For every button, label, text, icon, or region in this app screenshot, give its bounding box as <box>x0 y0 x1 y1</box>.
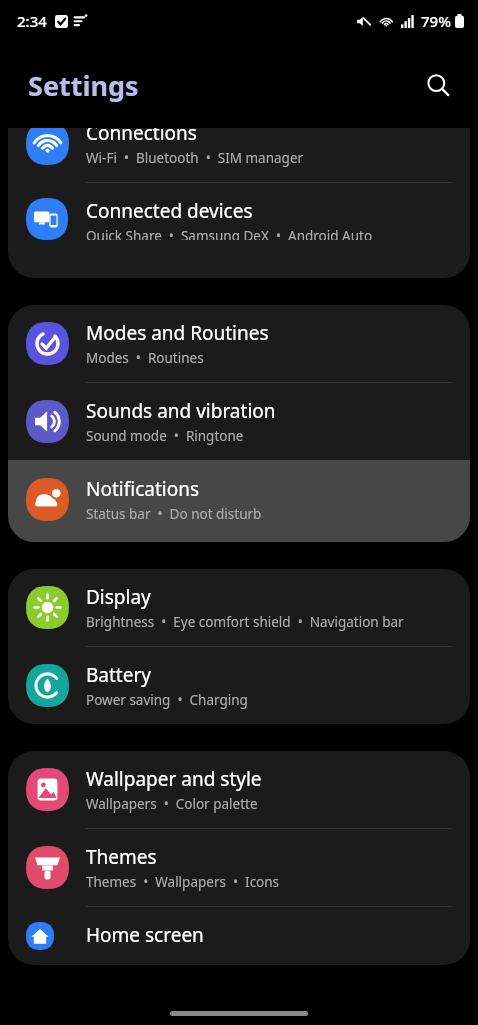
button[interactable]: Home screen <box>8 907 470 965</box>
staticText: Modes and Routines <box>86 320 269 346</box>
staticText: Display <box>86 584 151 610</box>
button[interactable]: Battery <box>8 647 470 724</box>
staticText: Battery <box>86 662 151 688</box>
button[interactable]: Sounds and vibration <box>8 383 470 460</box>
staticText: Settings <box>28 67 139 104</box>
staticText: Notifications <box>86 476 200 502</box>
staticText: 79% <box>421 11 451 31</box>
staticText: Power saving • Charging <box>86 691 248 709</box>
staticText: Brightness • Eye comfort shield • Naviga… <box>86 613 404 631</box>
staticText: Wallpaper and style <box>86 766 262 792</box>
button[interactable]: Modes and Routines <box>8 305 470 382</box>
button[interactable]: Search settings <box>416 63 460 107</box>
staticText: Home screen <box>86 922 204 948</box>
staticText: Themes • Wallpapers • Icons <box>86 873 280 891</box>
button[interactable]: Wallpaper and style <box>8 751 470 828</box>
staticText: Modes • Routines <box>86 349 204 367</box>
staticText: Connected devices <box>86 198 253 224</box>
staticText: Quick Share • Samsung DeX • Android Auto <box>86 227 373 240</box>
staticText: Themes <box>86 844 157 870</box>
staticText: Sounds and vibration <box>86 398 276 424</box>
staticText: Wallpapers • Color palette <box>86 795 258 813</box>
staticText: Sound mode • Ringtone <box>86 427 244 445</box>
button[interactable]: Notifications <box>8 460 470 542</box>
staticText: 2:34 <box>17 11 47 31</box>
staticText: Wi-Fi • Bluetooth • SIM manager <box>86 149 304 167</box>
button[interactable]: Connected devices <box>8 183 470 255</box>
staticText: Status bar • Do not disturb <box>86 505 262 523</box>
staticText: Connections <box>86 128 197 146</box>
button[interactable]: Display <box>8 569 470 646</box>
button[interactable]: Themes <box>8 829 470 906</box>
button[interactable]: Connections <box>8 128 470 182</box>
